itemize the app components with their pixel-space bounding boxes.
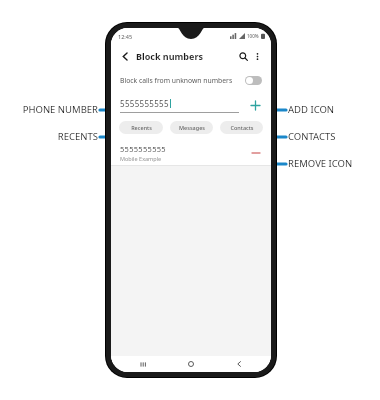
staticText: Recents <box>131 124 152 131</box>
button[interactable]: Block calls from unknown numbers <box>111 68 271 92</box>
staticText: 100% <box>247 33 259 39</box>
button[interactable]: Back <box>118 49 132 63</box>
button[interactable]: Home <box>176 356 206 372</box>
staticText: 5555555555 <box>120 98 169 109</box>
button[interactable]: Recents <box>119 121 163 134</box>
button[interactable]: Remove number <box>249 146 263 160</box>
staticText: Contacts <box>230 124 254 131</box>
staticText: 12:45 <box>118 33 133 40</box>
staticText: Mobile Example <box>120 155 162 162</box>
staticText: Block numbers <box>136 50 203 62</box>
staticText: RECENTS <box>2 130 98 143</box>
staticText: CONTACTS <box>288 130 380 143</box>
button[interactable]: Back <box>224 356 254 372</box>
button[interactable]: Messages <box>170 121 213 134</box>
button[interactable]: Search <box>236 49 250 63</box>
staticText: 5555555555 <box>120 144 166 154</box>
button[interactable]: Add number <box>247 97 263 113</box>
button[interactable]: Contacts <box>220 121 263 134</box>
staticText: PHONE NUMBER <box>2 103 98 116</box>
button[interactable]: Recent apps <box>129 356 159 372</box>
button[interactable]: More options <box>250 49 264 63</box>
staticText: Block calls from unknown numbers <box>120 76 233 85</box>
staticText: REMOVE ICON <box>288 157 380 170</box>
button[interactable]: 5555555555 <box>111 140 271 165</box>
staticText: ADD ICON <box>288 103 380 116</box>
staticText: Messages <box>179 124 205 131</box>
